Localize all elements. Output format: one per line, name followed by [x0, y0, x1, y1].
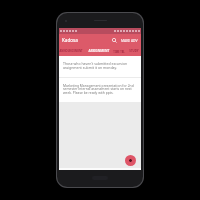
- staticText: Kadosa: [62, 37, 78, 43]
- button[interactable]: TIME TBL: [113, 46, 125, 56]
- button[interactable]: ANNOUNCEMENT: [59, 46, 82, 56]
- button[interactable]: STUDY: [128, 46, 139, 56]
- staticText: ASSIGNMENT: [79, 49, 119, 53]
- button[interactable]: Marketing Management presentation for 2n…: [59, 78, 141, 102]
- button[interactable]: MAKE ADV: [121, 36, 138, 44]
- staticText: Marketing Management presentation for 2n…: [63, 83, 134, 95]
- button[interactable]: Search: [111, 37, 117, 43]
- staticText: STUDY: [114, 49, 143, 53]
- staticText: MAKE ADV: [121, 38, 138, 42]
- button[interactable]: Add announcement: [125, 155, 136, 166]
- button[interactable]: ASSIGNMENT: [88, 46, 109, 56]
- staticText: TIME TBL: [99, 50, 139, 53]
- staticText: ANNOUNCEMENT: [57, 49, 91, 53]
- staticText: Those who haven't submitted excursion as…: [63, 61, 128, 70]
- button[interactable]: Those who haven't submitted excursion as…: [59, 56, 141, 77]
